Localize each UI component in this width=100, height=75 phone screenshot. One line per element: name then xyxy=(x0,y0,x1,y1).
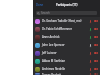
staticText: Archimes Nedelle xyxy=(42,67,87,71)
button[interactable]: Microphone xyxy=(89,20,92,23)
button[interactable]: Microphone xyxy=(89,52,92,55)
button[interactable]: Search xyxy=(36,11,97,15)
button[interactable]: Camera xyxy=(94,59,98,63)
button[interactable]: John Lee Spencer xyxy=(33,41,100,49)
button[interactable]: Microphone xyxy=(89,60,92,63)
staticText: Participants (17) xyxy=(56,3,78,7)
button[interactable]: Archimes Nedelle xyxy=(33,65,100,73)
button[interactable]: Done xyxy=(33,0,47,9)
button[interactable]: Abbas M Sarthian xyxy=(33,57,100,65)
button[interactable]: Camera xyxy=(94,51,98,55)
button[interactable]: Camera xyxy=(94,19,98,23)
button[interactable]: Anne Andrick xyxy=(33,33,100,41)
staticText: Abbas M Sarthian xyxy=(42,59,87,63)
button[interactable]: Microphone xyxy=(89,68,92,71)
button[interactable]: Microphone xyxy=(89,73,92,75)
button[interactable]: Camera xyxy=(94,43,98,47)
button[interactable]: Camera xyxy=(94,67,98,71)
staticText: Jeff Luisner xyxy=(42,51,87,55)
button[interactable]: Camera xyxy=(94,27,98,31)
staticText: Search xyxy=(41,11,50,15)
staticText: Dr. Fabio Schiffbrenner xyxy=(42,27,87,31)
button[interactable]: Microphone xyxy=(89,44,92,47)
staticText: Dr. Graham Tadokh (Host, me) xyxy=(42,19,87,23)
button[interactable]: Jeff Luisner xyxy=(33,49,100,57)
staticText: Done xyxy=(36,3,44,7)
staticText: Tomas Beckett xyxy=(42,73,87,75)
button[interactable]: Camera xyxy=(94,73,98,75)
button[interactable]: Tomas Beckett xyxy=(33,73,100,75)
staticText: John Lee Spencer xyxy=(42,43,87,47)
button[interactable]: Dr. Graham Tadokh (Host, me) xyxy=(33,17,100,25)
button[interactable]: Camera xyxy=(94,35,98,39)
staticText: Anne Andrick xyxy=(42,35,87,39)
button[interactable]: Microphone xyxy=(89,36,92,39)
button[interactable]: Dr. Fabio Schiffbrenner xyxy=(33,25,100,33)
button[interactable]: Microphone xyxy=(89,28,92,31)
